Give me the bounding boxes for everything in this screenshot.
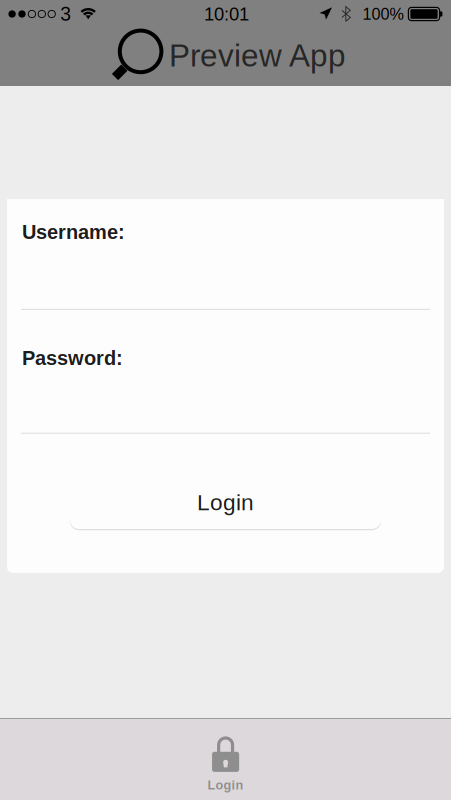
staticText: Password: (22, 347, 123, 369)
staticText: Login (197, 490, 254, 515)
staticText: 100% (362, 5, 403, 23)
staticText: 10:01 (204, 4, 249, 24)
staticText: Login (207, 778, 243, 792)
staticText: Username: (22, 221, 125, 243)
button[interactable]: Login (0, 719, 451, 800)
button[interactable]: Login (70, 476, 381, 529)
staticText: Preview App (169, 38, 346, 73)
staticText: 3 (60, 3, 71, 25)
